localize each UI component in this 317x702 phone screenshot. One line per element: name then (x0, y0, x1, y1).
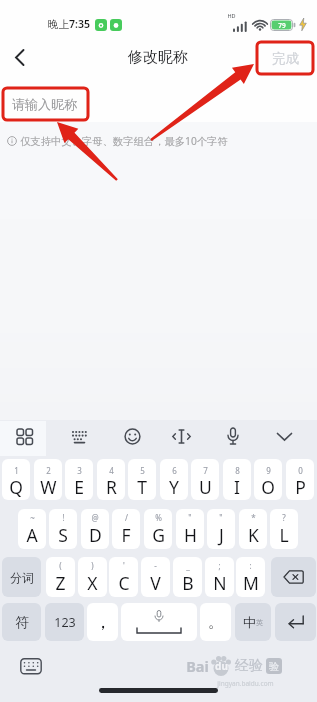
staticText: P (295, 475, 306, 499)
button[interactable]: 3 (65, 459, 93, 500)
staticText: du (215, 659, 228, 673)
button[interactable]: ; (205, 557, 234, 597)
staticText: @ (91, 512, 99, 523)
staticText: 中 (243, 614, 256, 630)
staticText: 请输入昵称 (12, 96, 77, 112)
staticText: ( (59, 560, 62, 571)
staticText: 3 (77, 465, 82, 476)
button[interactable]: - (141, 557, 170, 597)
button[interactable]: 符 (2, 603, 41, 641)
staticText: Z (55, 571, 66, 595)
staticText: ) (91, 560, 94, 571)
button[interactable] (271, 557, 316, 597)
staticText: 经验 (235, 657, 263, 675)
staticText: L (279, 523, 289, 547)
staticText: V (150, 571, 161, 595)
button[interactable]: ( (46, 557, 75, 597)
staticText: 9 (266, 465, 271, 476)
button[interactable]: ~ (18, 509, 46, 549)
button[interactable] (172, 428, 191, 445)
staticText: 123 (54, 614, 76, 631)
button[interactable]: 4 (97, 459, 125, 500)
staticText: K (248, 523, 259, 547)
staticText: ~ (30, 512, 35, 523)
button[interactable]: 5 (128, 459, 156, 500)
button[interactable]: ! (49, 509, 77, 549)
staticText: A (26, 523, 38, 547)
staticText: N (213, 571, 227, 595)
button[interactable]: 9 (254, 459, 282, 500)
button[interactable]: 0 (286, 459, 314, 500)
button[interactable] (276, 432, 293, 442)
staticText: _ (186, 560, 190, 571)
staticText: - (154, 560, 157, 571)
staticText: 英 (256, 618, 263, 627)
staticText: ' (123, 560, 125, 571)
staticText: 4 (109, 465, 114, 476)
button[interactable] (275, 603, 316, 641)
staticText: O (261, 475, 275, 499)
button[interactable]: 完成 (262, 45, 308, 71)
button[interactable]: 请输入昵称 (0, 86, 317, 122)
staticText: ! (62, 512, 65, 523)
button[interactable]: ， (87, 603, 118, 641)
button[interactable]: ) (78, 557, 107, 597)
staticText: jingyan.baidu.com (217, 679, 274, 688)
staticText: 仅支持中文、字母、数字组合，最多10个字符 (20, 134, 228, 148)
staticText: 8 (235, 465, 240, 476)
staticText: ， (94, 611, 112, 634)
button[interactable]: " (207, 509, 235, 549)
staticText: HD (227, 12, 236, 19)
button[interactable] (226, 427, 240, 446)
staticText: % (155, 512, 162, 523)
staticText: 0 (298, 465, 303, 476)
staticText: 晚上7:35 (48, 17, 90, 31)
button[interactable]: : (236, 557, 265, 597)
staticText: / (125, 512, 128, 523)
staticText: G (152, 523, 165, 547)
staticText: : (249, 560, 252, 571)
staticText: 完成 (272, 50, 299, 67)
staticText: U (199, 475, 212, 499)
button[interactable]: 2 (34, 459, 62, 500)
button[interactable]: ? (270, 509, 298, 549)
staticText: C (118, 571, 130, 595)
button[interactable]: _ (173, 557, 202, 597)
button[interactable]: / (112, 509, 140, 549)
staticText: 验 (269, 660, 279, 673)
staticText: ? (282, 512, 286, 523)
button[interactable]: 123 (45, 603, 84, 641)
button[interactable] (16, 428, 34, 446)
staticText: J (219, 523, 224, 547)
button[interactable]: 分词 (2, 557, 41, 597)
staticText: S (58, 523, 68, 547)
staticText: Y (169, 475, 179, 499)
button[interactable] (124, 428, 141, 445)
staticText: 79 (278, 21, 286, 30)
button[interactable]: % (144, 509, 172, 549)
button[interactable]: 7 (191, 459, 219, 500)
button[interactable]: 1 (2, 459, 30, 500)
button[interactable]: 6 (160, 459, 188, 500)
button[interactable]: " (176, 509, 204, 549)
button[interactable] (121, 603, 197, 641)
staticText: 5 (140, 465, 145, 476)
staticText: 2 (46, 465, 51, 476)
button[interactable] (20, 658, 42, 676)
button[interactable]: 。 (200, 603, 231, 641)
staticText: M (243, 571, 259, 595)
staticText: F (121, 523, 131, 547)
button[interactable] (6, 42, 36, 72)
staticText: Bai (186, 656, 209, 676)
button[interactable]: ' (109, 557, 138, 597)
button[interactable]: 8 (223, 459, 251, 500)
staticText: " (219, 512, 223, 523)
button[interactable]: @ (81, 509, 109, 549)
staticText: R (106, 475, 117, 499)
staticText: X (87, 571, 98, 595)
staticText: E (74, 475, 84, 499)
button[interactable]: 中 (235, 603, 271, 641)
staticText: 6 (172, 465, 177, 476)
button[interactable]: * (239, 509, 267, 549)
button[interactable] (71, 430, 88, 444)
